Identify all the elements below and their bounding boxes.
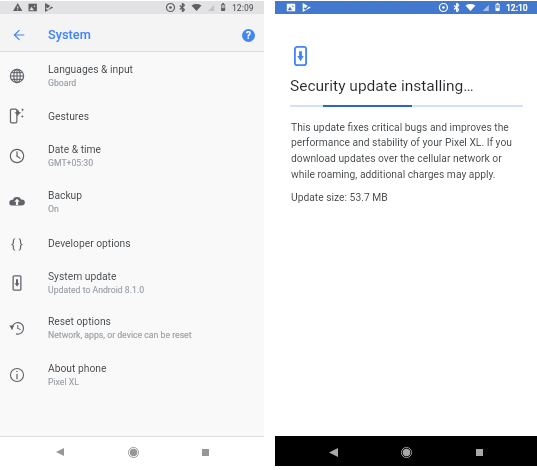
button[interactable]: Recent apps <box>465 438 493 466</box>
staticText: System update <box>48 270 117 282</box>
staticText: Gboard <box>48 78 77 88</box>
staticText: GMT+05:30 <box>48 158 94 168</box>
button[interactable]: Navigate up <box>8 24 29 45</box>
button[interactable]: Backup <box>0 179 264 225</box>
staticText: ? <box>246 30 251 42</box>
staticText: About phone <box>48 362 107 374</box>
button[interactable]: Home <box>119 438 147 466</box>
button[interactable]: Date & time <box>0 133 264 179</box>
staticText: System <box>48 27 91 42</box>
button[interactable]: Languages & input <box>0 53 264 99</box>
staticText: Backup <box>48 189 83 201</box>
staticText: Pixel XL <box>48 377 79 387</box>
staticText: Languages & input <box>48 63 133 75</box>
staticText: 12:10 <box>506 3 528 13</box>
staticText: Security update installing… <box>290 77 474 95</box>
button[interactable]: Back <box>319 438 347 466</box>
button[interactable]: Home <box>392 438 420 466</box>
staticText: Reset options <box>48 315 111 327</box>
button[interactable]: System update <box>0 260 264 306</box>
button[interactable]: Gestures <box>0 99 264 134</box>
button[interactable]: Help <box>238 25 259 46</box>
staticText: 12:09 <box>232 3 254 13</box>
staticText: { } <box>11 236 24 251</box>
staticText: Network, apps, or device can be reset <box>48 330 192 340</box>
staticText: Gestures <box>48 110 90 122</box>
staticText: Updated to Android 8.1.0 <box>48 285 145 295</box>
staticText: This update fixes critical bugs and impr… <box>291 121 519 181</box>
button[interactable]: { } <box>0 226 264 261</box>
staticText: Date & time <box>48 143 102 155</box>
button[interactable]: Recent apps <box>191 438 219 466</box>
staticText: Update size: 53.7 MB <box>291 191 388 203</box>
button[interactable]: Reset options <box>0 305 264 351</box>
staticText: On <box>48 204 59 214</box>
button[interactable]: Back <box>46 438 74 466</box>
button[interactable]: About phone <box>0 352 264 398</box>
staticText: Developer options <box>48 237 131 249</box>
